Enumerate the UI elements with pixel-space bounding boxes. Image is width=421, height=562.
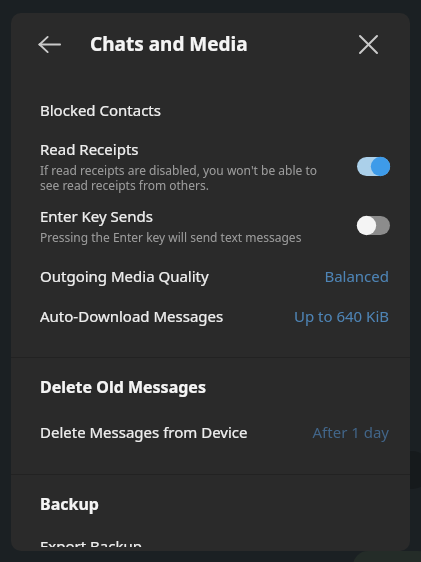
staticText: After 1 day bbox=[312, 422, 389, 442]
staticText: If read receipts are disabled, you won't… bbox=[40, 162, 317, 193]
staticText: Up to 640 KiB bbox=[293, 306, 389, 326]
staticText: Enter Key Sends bbox=[40, 206, 153, 226]
button[interactable]: Blocked Contacts bbox=[11, 96, 410, 124]
button[interactable]: Read Receipts bbox=[11, 139, 410, 193]
button[interactable]: Delete Messages from Device bbox=[11, 412, 410, 452]
button[interactable]: Back bbox=[26, 21, 72, 67]
button[interactable]: Close bbox=[346, 22, 390, 66]
staticText: Backup bbox=[40, 493, 99, 515]
button[interactable]: Enter Key Sends bbox=[11, 206, 410, 245]
staticText: Read Receipts bbox=[40, 139, 139, 159]
staticText: Delete Old Messages bbox=[40, 376, 206, 398]
staticText: Balanced bbox=[324, 266, 389, 286]
staticText: Auto-Download Messages bbox=[40, 306, 293, 326]
button[interactable]: Outgoing Media Quality bbox=[11, 256, 410, 296]
button[interactable]: Export Backup bbox=[11, 532, 410, 551]
staticText: Export Backup bbox=[40, 536, 142, 547]
staticText: Pressing the Enter key will send text me… bbox=[40, 229, 302, 245]
staticText: Blocked Contacts bbox=[40, 100, 161, 120]
staticText: Delete Messages from Device bbox=[40, 422, 312, 442]
button[interactable]: Auto-Download Messages bbox=[11, 296, 410, 336]
staticText: Outgoing Media Quality bbox=[40, 266, 324, 286]
staticText: Chats and Media bbox=[90, 31, 248, 57]
